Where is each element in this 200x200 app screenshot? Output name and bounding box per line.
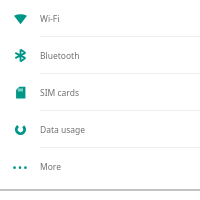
- staticText: SIM cards: [40, 87, 79, 99]
- staticText: Data usage: [40, 124, 86, 136]
- button[interactable]: Bluetooth: [0, 37, 200, 74]
- button[interactable]: Wi-Fi: [0, 0, 200, 37]
- staticText: More: [40, 161, 61, 173]
- button[interactable]: More: [0, 148, 200, 185]
- button[interactable]: Data usage: [0, 111, 200, 148]
- button[interactable]: SIM cards: [0, 74, 200, 111]
- staticText: Wi-Fi: [40, 13, 60, 25]
- staticText: Bluetooth: [40, 50, 80, 62]
